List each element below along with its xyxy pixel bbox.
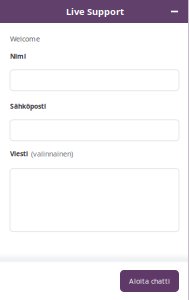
staticText: Live Support: [66, 5, 124, 18]
button[interactable]: Aloita chatti: [120, 270, 179, 292]
staticText: Viesti: [10, 149, 28, 158]
staticText: (valinnainen): [31, 149, 73, 159]
staticText: Sähköposti: [10, 102, 46, 111]
staticText: Nimi: [10, 52, 26, 61]
button[interactable]: Minimize: [159, 0, 190, 23]
staticText: Aloita chatti: [129, 276, 170, 286]
staticText: Welcome: [10, 34, 40, 44]
